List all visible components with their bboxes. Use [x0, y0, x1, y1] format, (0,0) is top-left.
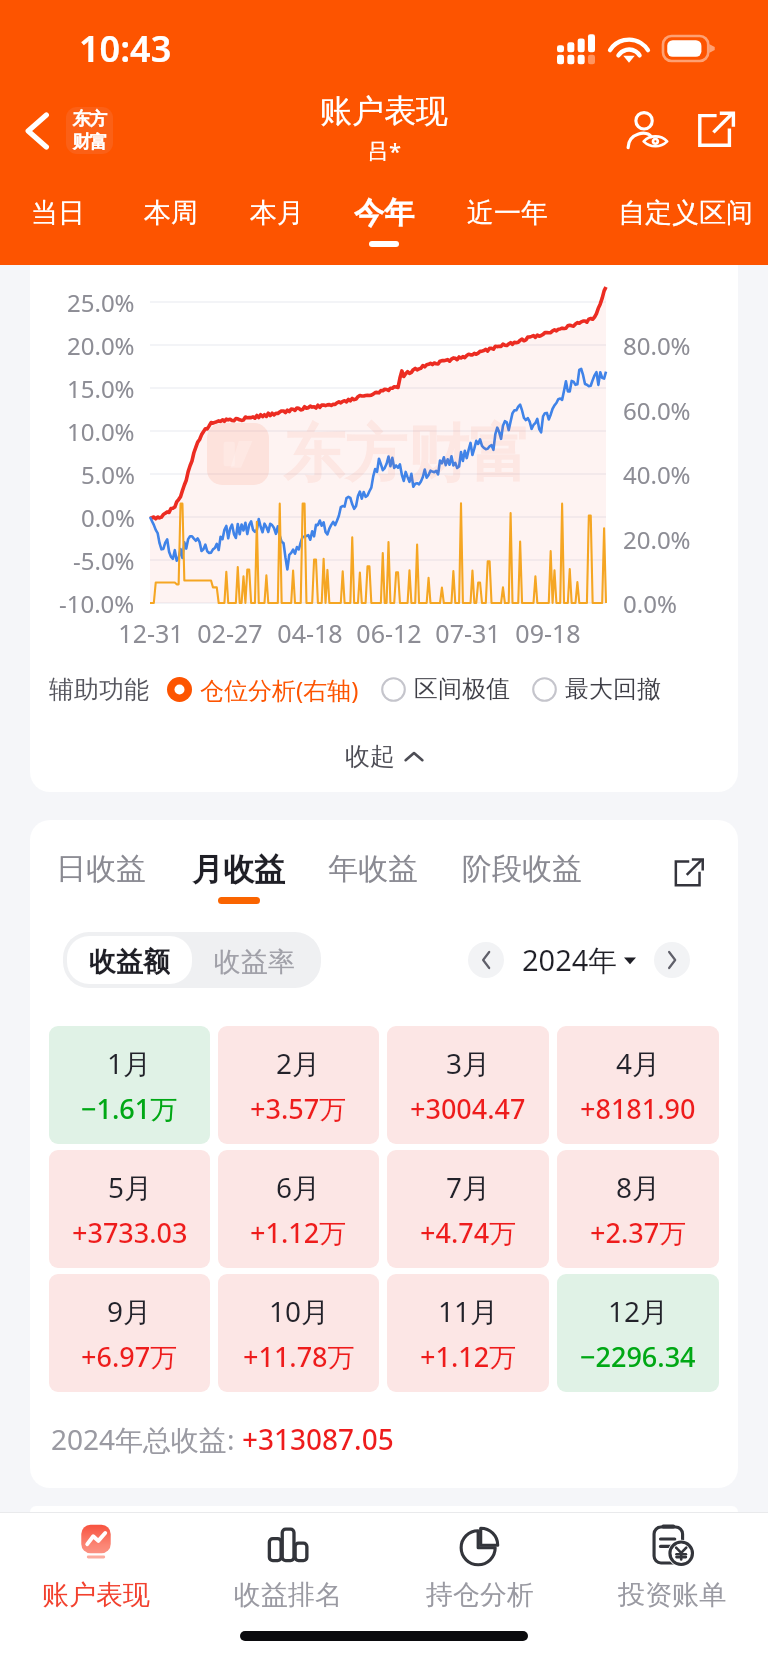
staticText: 仓位分析(右轴) — [200, 673, 359, 706]
staticText: 东方财富 — [283, 415, 531, 493]
button[interactable]: 当日 — [8, 176, 108, 265]
staticText: 最大回撤 — [565, 674, 661, 704]
staticText: 收益额 — [89, 945, 170, 975]
button[interactable]: 4月 — [557, 1026, 719, 1144]
staticText: 0.0% — [81, 501, 135, 534]
button[interactable]: 7月 — [387, 1150, 549, 1268]
staticText: +3004.47 — [410, 1090, 526, 1127]
button[interactable]: Back — [18, 99, 119, 162]
staticText: 8月 — [616, 1168, 661, 1206]
button[interactable]: 投资账单 — [576, 1513, 768, 1617]
other: Back — [24, 111, 50, 151]
staticText: 自定义区间 — [618, 196, 753, 230]
staticText: 收益排名 — [234, 1578, 342, 1612]
staticText: 3月 — [446, 1044, 491, 1082]
button[interactable]: 9月 — [49, 1274, 210, 1392]
button[interactable]: 收起 — [321, 733, 448, 780]
staticText: +1.12万 — [250, 1214, 347, 1251]
button[interactable]: 日收益 — [46, 846, 156, 907]
button[interactable]: 近一年 — [445, 176, 569, 265]
staticText: 当日 — [31, 196, 85, 230]
staticText: 12-31 — [118, 616, 184, 650]
staticText: 12月 — [608, 1292, 669, 1330]
button[interactable]: 今年 — [334, 176, 434, 265]
staticText: 07-31 — [435, 616, 501, 650]
staticText: 年收益 — [328, 850, 418, 888]
button[interactable]: 收益率 — [192, 936, 317, 984]
staticText: −1.61万 — [81, 1090, 178, 1127]
button[interactable]: 阶段收益 — [452, 846, 592, 907]
button[interactable]: 月收益 — [182, 846, 295, 908]
staticText: 06-12 — [356, 616, 422, 650]
button[interactable]: Next year — [654, 942, 690, 978]
staticText: +6.97万 — [81, 1338, 178, 1375]
staticText: 4月 — [616, 1044, 661, 1082]
button[interactable]: 2月 — [218, 1026, 379, 1144]
staticText: 东方 — [73, 108, 107, 131]
button[interactable]: 本周 — [121, 176, 221, 265]
staticText: 月收益 — [192, 850, 285, 889]
staticText: -10.0% — [59, 587, 135, 620]
button[interactable]: 自定义区间 — [585, 176, 768, 265]
staticText: 20.0% — [623, 523, 691, 556]
staticText: 6月 — [276, 1168, 321, 1206]
staticText: 7月 — [446, 1168, 491, 1206]
staticText: 今年 — [354, 194, 414, 232]
staticText: 吕* — [367, 135, 402, 165]
staticText: 10.0% — [67, 415, 135, 448]
button[interactable]: 2024年 — [518, 936, 640, 984]
button[interactable]: 11月 — [387, 1274, 549, 1392]
button[interactable]: Share — [684, 99, 746, 161]
staticText: 9月 — [107, 1292, 152, 1330]
staticText: 本周 — [144, 196, 198, 230]
button[interactable]: 账户表现 — [0, 1513, 192, 1617]
staticText: 15.0% — [67, 372, 135, 405]
staticText: +8181.90 — [580, 1090, 696, 1127]
staticText: 2月 — [276, 1044, 321, 1082]
button[interactable]: 5月 — [49, 1150, 210, 1268]
staticText: -5.0% — [73, 544, 135, 577]
button[interactable]: 持仓分析 — [384, 1513, 576, 1617]
button[interactable]: 1月 — [49, 1026, 210, 1144]
button[interactable]: 8月 — [557, 1150, 719, 1268]
staticText: 20.0% — [67, 329, 135, 362]
staticText: 02-27 — [197, 616, 263, 650]
staticText: 区间极值 — [414, 674, 510, 704]
staticText: 04-18 — [277, 616, 343, 650]
button[interactable]: Previous year — [468, 942, 504, 978]
staticText: 阶段收益 — [462, 850, 582, 888]
staticText: +3.57万 — [250, 1090, 347, 1127]
staticText: 账户表现 — [42, 1578, 150, 1612]
button[interactable]: 仓位分析(右轴) — [167, 669, 359, 710]
button[interactable]: 收益额 — [67, 936, 192, 984]
staticText: 5月 — [108, 1168, 153, 1206]
staticText: +11.78万 — [243, 1338, 355, 1375]
staticText: 日收益 — [56, 850, 146, 888]
staticText: 10:43 — [79, 24, 172, 73]
button[interactable]: 收益排名 — [192, 1513, 384, 1617]
button[interactable]: Account — [616, 99, 678, 161]
staticText: 0.0% — [623, 587, 677, 620]
staticText: 账户表现 — [320, 91, 448, 131]
button[interactable]: 年收益 — [318, 846, 428, 907]
staticText: 80.0% — [623, 329, 691, 362]
staticText: +2.37万 — [590, 1214, 687, 1251]
staticText: 财富 — [73, 131, 107, 154]
staticText: 本月 — [250, 196, 304, 230]
button[interactable]: 最大回撤 — [532, 670, 661, 708]
staticText: 09-18 — [515, 616, 581, 650]
button[interactable]: Share — [662, 847, 714, 899]
staticText: 1月 — [107, 1044, 152, 1082]
staticText: 2024年总收益: — [51, 1420, 242, 1458]
button[interactable]: 6月 — [218, 1150, 379, 1268]
button[interactable]: 3月 — [387, 1026, 549, 1144]
button[interactable]: 区间极值 — [381, 670, 510, 708]
staticText: 10月 — [269, 1292, 330, 1330]
button[interactable]: 10月 — [218, 1274, 379, 1392]
staticText: +3733.03 — [72, 1214, 188, 1251]
staticText: 近一年 — [467, 196, 548, 230]
staticText: +4.74万 — [420, 1214, 517, 1251]
button[interactable]: 本月 — [227, 176, 327, 265]
button[interactable]: 12月 — [557, 1274, 719, 1392]
staticText: 25.0% — [67, 286, 135, 319]
